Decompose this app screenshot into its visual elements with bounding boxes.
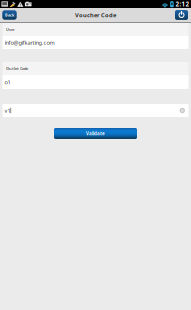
button[interactable]: Back xyxy=(2,10,16,19)
button[interactable]: Clear text xyxy=(178,106,187,115)
button[interactable]: Power xyxy=(175,10,188,20)
staticText: 2:12 xyxy=(175,0,189,8)
staticText: User xyxy=(6,27,15,32)
button[interactable]: Validate xyxy=(54,128,137,139)
staticText: info@gifkarting.com xyxy=(4,39,54,46)
staticText: o1 xyxy=(4,78,10,86)
staticText: Validate xyxy=(86,130,105,136)
staticText: Voucher Code xyxy=(75,11,116,19)
staticText: Outlet Code xyxy=(6,66,28,71)
staticText: v1 xyxy=(4,107,10,114)
staticText: Back xyxy=(5,12,14,18)
